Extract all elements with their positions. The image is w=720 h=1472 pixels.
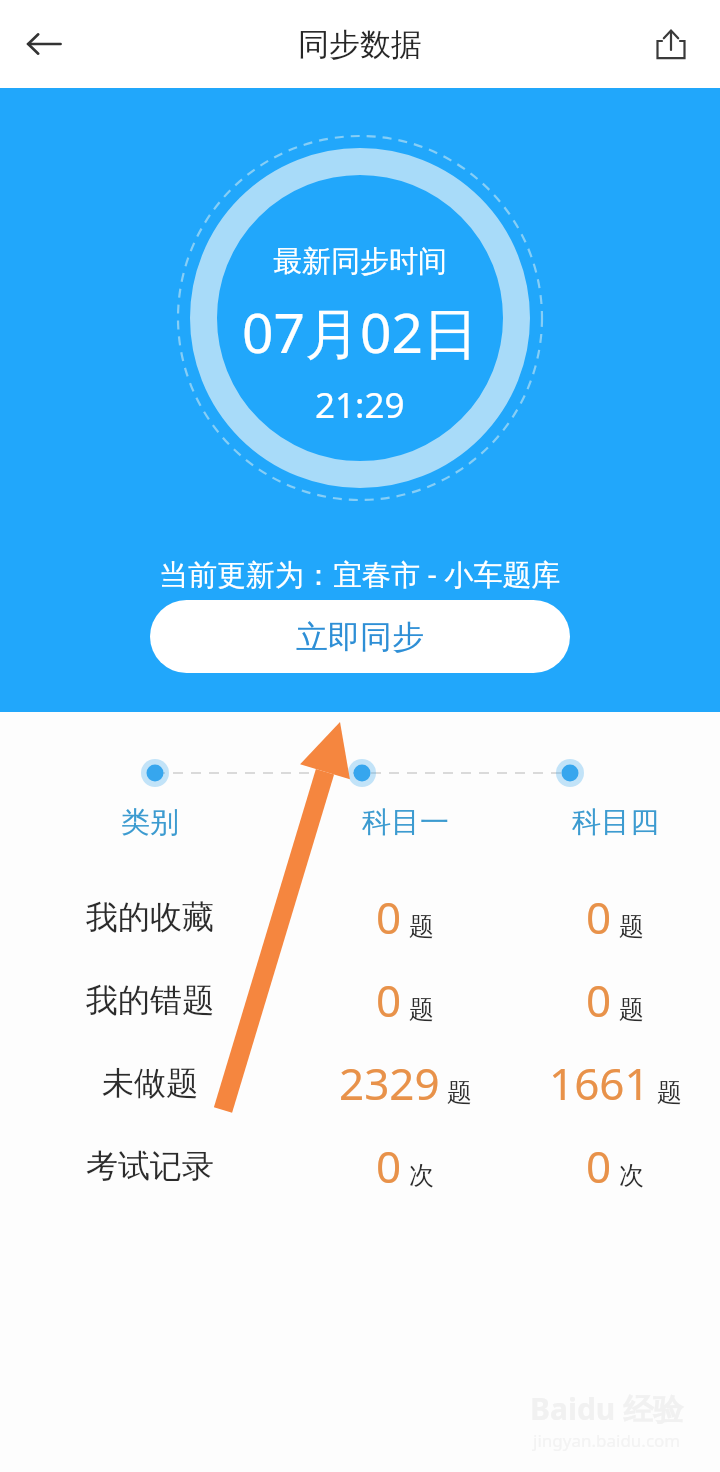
- staticText: 最新同步时间: [273, 243, 447, 280]
- staticText: 07月02日: [242, 294, 478, 369]
- button[interactable]: 我的收藏: [0, 884, 720, 950]
- staticText: 0: [586, 887, 612, 947]
- staticText: 我的错题: [86, 980, 214, 1020]
- button[interactable]: 我的错题: [0, 967, 720, 1033]
- button[interactable]: 立即同步: [150, 600, 570, 673]
- staticText: 2329: [339, 1053, 440, 1113]
- staticText: 立即同步: [296, 617, 424, 657]
- staticText: 考试记录: [86, 1146, 214, 1186]
- staticText: 0: [586, 1136, 612, 1196]
- staticText: 次: [409, 1160, 434, 1191]
- staticText: 21:29: [315, 381, 405, 429]
- staticText: 题: [447, 1077, 472, 1108]
- staticText: 题: [657, 1077, 682, 1108]
- staticText: 次: [619, 1160, 644, 1191]
- staticText: 0: [376, 970, 402, 1030]
- staticText: 0: [586, 970, 612, 1030]
- staticText: 题: [409, 911, 434, 942]
- staticText: 0: [376, 887, 402, 947]
- button[interactable]: 未做题: [0, 1050, 720, 1116]
- staticText: 题: [619, 994, 644, 1025]
- button[interactable]: 考试记录: [0, 1133, 720, 1199]
- staticText: 科目四: [572, 804, 659, 841]
- staticText: 类别: [121, 804, 179, 841]
- staticText: 当前更新为：宜春市 - 小车题库: [159, 554, 561, 594]
- staticText: jingyan.baidu.com: [533, 1429, 681, 1452]
- button[interactable]: Share: [642, 15, 700, 73]
- staticText: 同步数据: [298, 25, 422, 64]
- staticText: 0: [376, 1136, 402, 1196]
- staticText: 我的收藏: [86, 897, 214, 937]
- staticText: 科目一: [362, 804, 449, 841]
- staticText: 题: [619, 911, 644, 942]
- staticText: 未做题: [102, 1063, 198, 1103]
- staticText: Baidu 经验: [530, 1388, 684, 1429]
- staticText: 题: [409, 994, 434, 1025]
- staticText: 1661: [549, 1053, 650, 1113]
- button[interactable]: Back: [14, 14, 74, 74]
